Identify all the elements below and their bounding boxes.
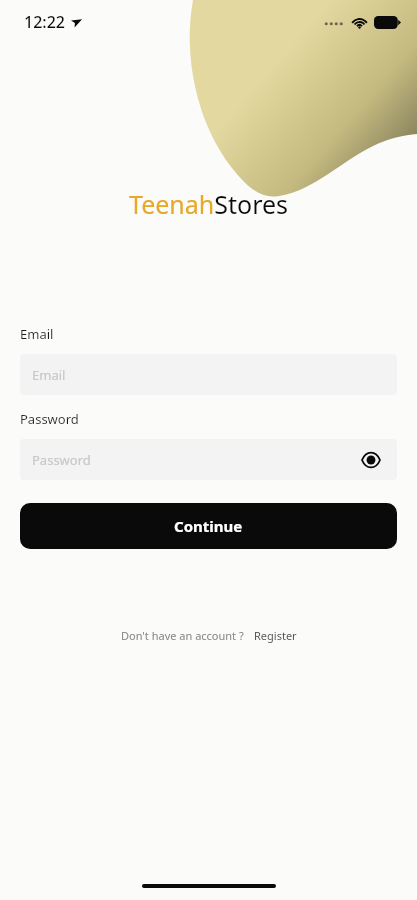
button[interactable]: Continue [20,503,397,549]
button[interactable]: Password [20,439,397,480]
button[interactable]: Email [20,354,397,395]
staticText: Email [20,325,54,343]
button[interactable]: Register [254,628,297,643]
staticText: Email [32,366,66,384]
staticText: 12:22 [24,11,65,33]
button[interactable]: Show password [357,446,385,474]
staticText: Password [32,451,91,469]
staticText: Password [20,410,79,428]
staticText: Continue [174,516,243,536]
staticText: Register [254,628,297,643]
staticText: TeenahStores [129,187,289,221]
staticText: Don't have an account ? [121,628,244,643]
